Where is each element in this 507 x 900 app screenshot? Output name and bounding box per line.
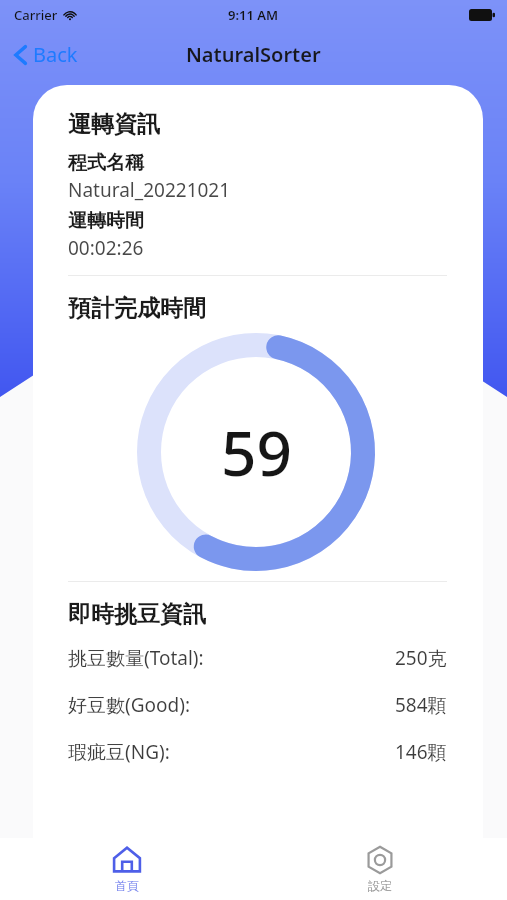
button[interactable]: Settings (253, 838, 507, 900)
staticText: 好豆數(Good): (68, 692, 190, 718)
staticText: 即時挑豆資訊 (68, 600, 206, 629)
staticText: 00:02:26 (68, 235, 144, 261)
staticText: 59 (221, 410, 292, 494)
staticText: 首頁 (115, 878, 139, 893)
staticText: 設定 (368, 878, 392, 893)
button[interactable]: Back (8, 37, 84, 72)
staticText: 運轉時間 (68, 209, 144, 233)
staticText: NaturalSorter (186, 41, 321, 68)
staticText: 預計完成時間 (68, 294, 206, 323)
button[interactable]: 挑豆數量(Total): (33, 645, 483, 671)
staticText: Natural_20221021 (68, 177, 231, 203)
button[interactable]: 首頁 (0, 838, 253, 900)
button[interactable]: 瑕疵豆(NG): (33, 739, 483, 765)
staticText: 250克 (395, 645, 447, 671)
staticText: 584顆 (395, 692, 447, 718)
staticText: 146顆 (395, 739, 447, 765)
staticText: 挑豆數量(Total): (68, 645, 204, 671)
staticText: Back (33, 41, 78, 68)
staticText: Carrier (14, 6, 58, 24)
staticText: 瑕疵豆(NG): (68, 739, 170, 765)
button[interactable]: 好豆數(Good): (33, 692, 483, 718)
staticText: 運轉資訊 (68, 110, 160, 139)
staticText: 9:11 AM (228, 6, 279, 24)
staticText: 程式名稱 (68, 151, 144, 175)
